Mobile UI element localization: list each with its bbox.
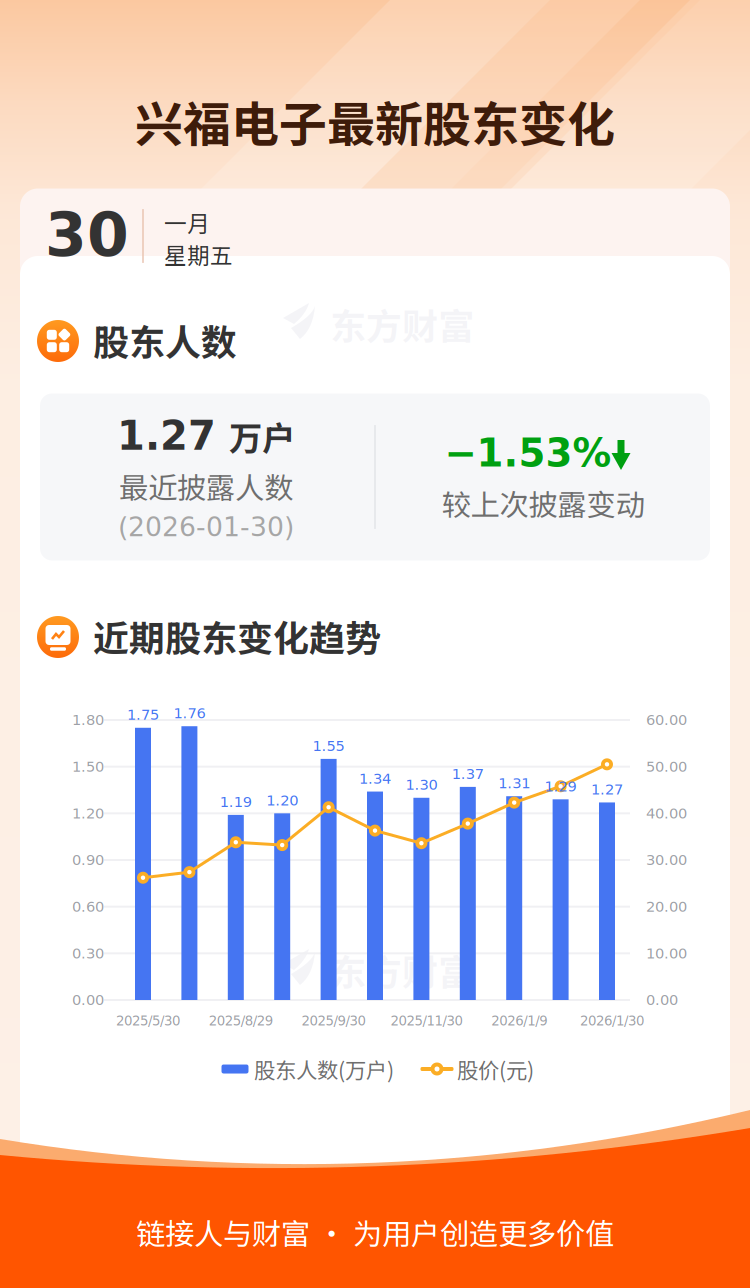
staticText: 1.20 [266,792,298,809]
staticText: 1.31 [498,775,530,792]
staticText: 1.34 [359,770,391,787]
staticText: 60.00 [646,711,687,729]
staticText: 1.27 [591,781,623,798]
staticText: 股东人数 [93,314,237,366]
staticText: 0.60 [72,898,104,915]
staticText: 20.00 [646,898,687,915]
staticText: 0.00 [72,991,104,1009]
staticText: −1.53% [444,430,611,475]
staticText: 1.30 [405,776,437,793]
staticText: 万户 [229,412,295,460]
staticText: 1.76 [173,705,205,722]
staticText: 1.50 [72,758,104,775]
staticText: 东方财富 [330,298,474,350]
staticText: 1.20 [72,805,104,822]
staticText: 50.00 [646,758,687,775]
staticText: 股价(元) [457,1054,534,1084]
staticText: 30 [45,200,129,270]
staticText: 2026/1/9 [491,1013,547,1029]
staticText: 2025/9/30 [302,1013,366,1029]
staticText: 0.90 [72,851,104,869]
staticText: 0.30 [72,945,104,962]
staticText: 30.00 [646,851,687,869]
staticText: (2026-01-30) [118,511,294,542]
staticText: 链接人与财富 · 为用户创造更多价值 [136,1211,614,1253]
staticText: 1.80 [72,711,104,729]
staticText: 2025/5/30 [116,1013,180,1029]
staticText: 1.55 [313,737,345,754]
staticText: 40.00 [646,805,687,822]
staticText: 1.19 [220,793,252,810]
staticText: 10.00 [646,945,687,962]
staticText: 2025/8/29 [209,1013,273,1029]
staticText: 2026/1/30 [580,1013,644,1029]
staticText: 东方财富 [330,944,474,996]
staticText: 1.75 [127,706,159,723]
staticText: 股东人数(万户) [254,1054,394,1084]
staticText: 兴福电子最新股东变化 [135,86,615,156]
staticText: 最近披露人数 [119,465,293,507]
staticText: 近期股东变化趋势 [93,610,381,662]
staticText: 较上次披露变动 [441,482,644,524]
staticText: 一月 [164,206,210,238]
staticText: 1.37 [452,765,484,782]
staticText: 2025/11/30 [390,1013,462,1029]
staticText: 星期五 [164,238,233,270]
staticText: 0.00 [646,991,678,1009]
staticText: 1.27 [117,413,216,459]
staticText: 1.29 [545,778,577,795]
